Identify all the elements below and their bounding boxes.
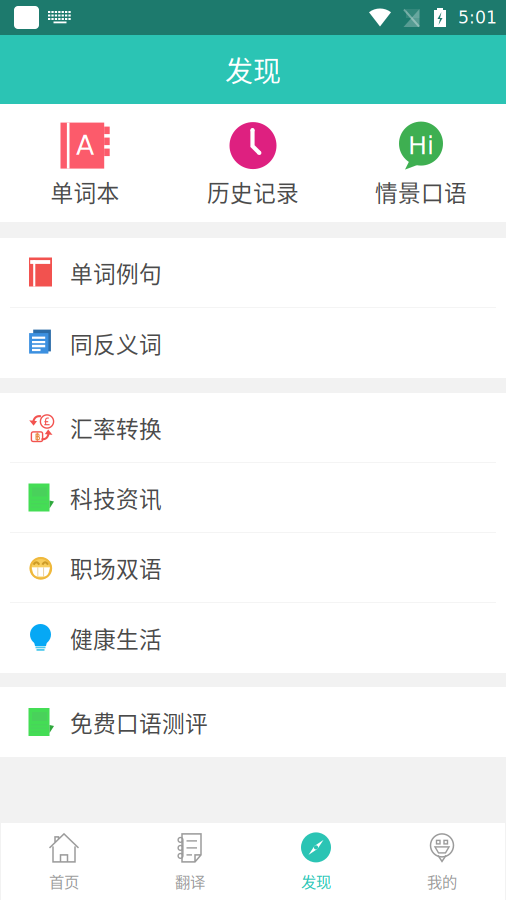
- button[interactable]: 同反义词: [0, 308, 506, 378]
- button[interactable]: 历史记录: [169, 106, 337, 220]
- staticText: 单词例句: [70, 256, 162, 289]
- staticText: 首页: [49, 870, 79, 892]
- staticText: 健康生活: [70, 622, 162, 654]
- staticText: 发现: [301, 870, 331, 892]
- button[interactable]: 汇率转换: [0, 393, 506, 463]
- staticText: 发现: [225, 49, 281, 90]
- staticText: 科技资讯: [70, 481, 162, 514]
- button[interactable]: A: [1, 106, 169, 220]
- button[interactable]: 免费口语测评: [0, 687, 506, 757]
- staticText: 翻译: [175, 870, 205, 892]
- staticText: 免费口语测评: [70, 706, 208, 738]
- button[interactable]: 首页: [1, 823, 127, 900]
- staticText: Hi: [408, 131, 434, 160]
- button[interactable]: 发现: [253, 823, 379, 900]
- staticText: 我的: [427, 870, 457, 892]
- button[interactable]: 科技资讯: [0, 463, 506, 533]
- button[interactable]: Hi: [337, 106, 505, 220]
- staticText: 职场双语: [70, 551, 162, 584]
- button[interactable]: 单词例句: [0, 238, 506, 308]
- button[interactable]: 健康生活: [0, 603, 506, 673]
- staticText: 单词本: [50, 175, 119, 208]
- button[interactable]: 翻译: [127, 823, 253, 900]
- button[interactable]: 职场双语: [0, 533, 506, 603]
- staticText: 情景口语: [375, 175, 467, 208]
- staticText: 汇率转换: [70, 411, 162, 444]
- staticText: 同反义词: [70, 327, 162, 359]
- staticText: 5:01: [458, 7, 497, 28]
- staticText: 历史记录: [207, 175, 299, 208]
- button[interactable]: 我的: [379, 823, 505, 900]
- staticText: A: [76, 130, 94, 161]
